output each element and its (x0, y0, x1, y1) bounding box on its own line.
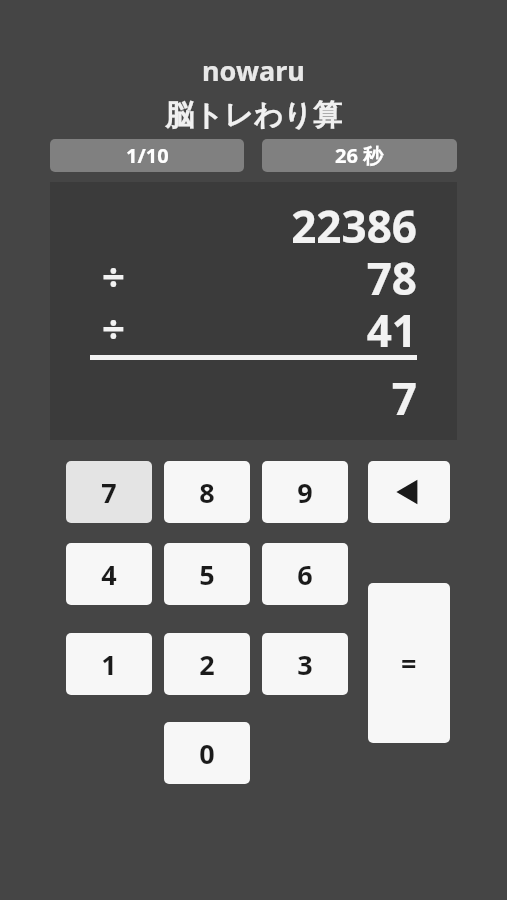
button[interactable]: = (368, 583, 450, 743)
button[interactable]: 4 (66, 543, 152, 605)
staticText: 3 (297, 646, 313, 683)
staticText: 26 秒 (335, 142, 384, 169)
button[interactable]: 26 秒 (262, 139, 457, 172)
button[interactable]: 8 (164, 461, 250, 523)
staticText: 6 (297, 556, 313, 593)
button[interactable]: 6 (262, 543, 348, 605)
staticText: ÷ (102, 248, 125, 300)
staticText: 2 (199, 646, 215, 683)
staticText: 7 (391, 368, 417, 428)
button[interactable]: 5 (164, 543, 250, 605)
staticText: 4 (101, 556, 117, 593)
staticText: 0 (199, 735, 215, 772)
button[interactable]: 7 (66, 461, 152, 523)
button[interactable]: 9 (262, 461, 348, 523)
staticText: 7 (101, 474, 117, 511)
button[interactable]: 1 (66, 633, 152, 695)
staticText: 1 (101, 646, 117, 683)
button[interactable]: 3 (262, 633, 348, 695)
button[interactable]: Backspace (368, 461, 450, 523)
button[interactable]: 0 (164, 722, 250, 784)
staticText: 22386 (291, 196, 417, 256)
staticText: 1/10 (126, 142, 169, 169)
button[interactable]: 1/10 (50, 139, 244, 172)
staticText: = (401, 645, 417, 682)
staticText: nowaru (202, 52, 305, 89)
staticText: 脳トレわり算 (165, 97, 342, 134)
button[interactable]: 2 (164, 633, 250, 695)
staticText: 41 (366, 300, 417, 352)
staticText: 9 (297, 474, 313, 511)
staticText: ÷ (102, 300, 125, 352)
staticText: 5 (199, 556, 215, 593)
staticText: 8 (199, 474, 215, 511)
staticText: 78 (366, 248, 417, 300)
